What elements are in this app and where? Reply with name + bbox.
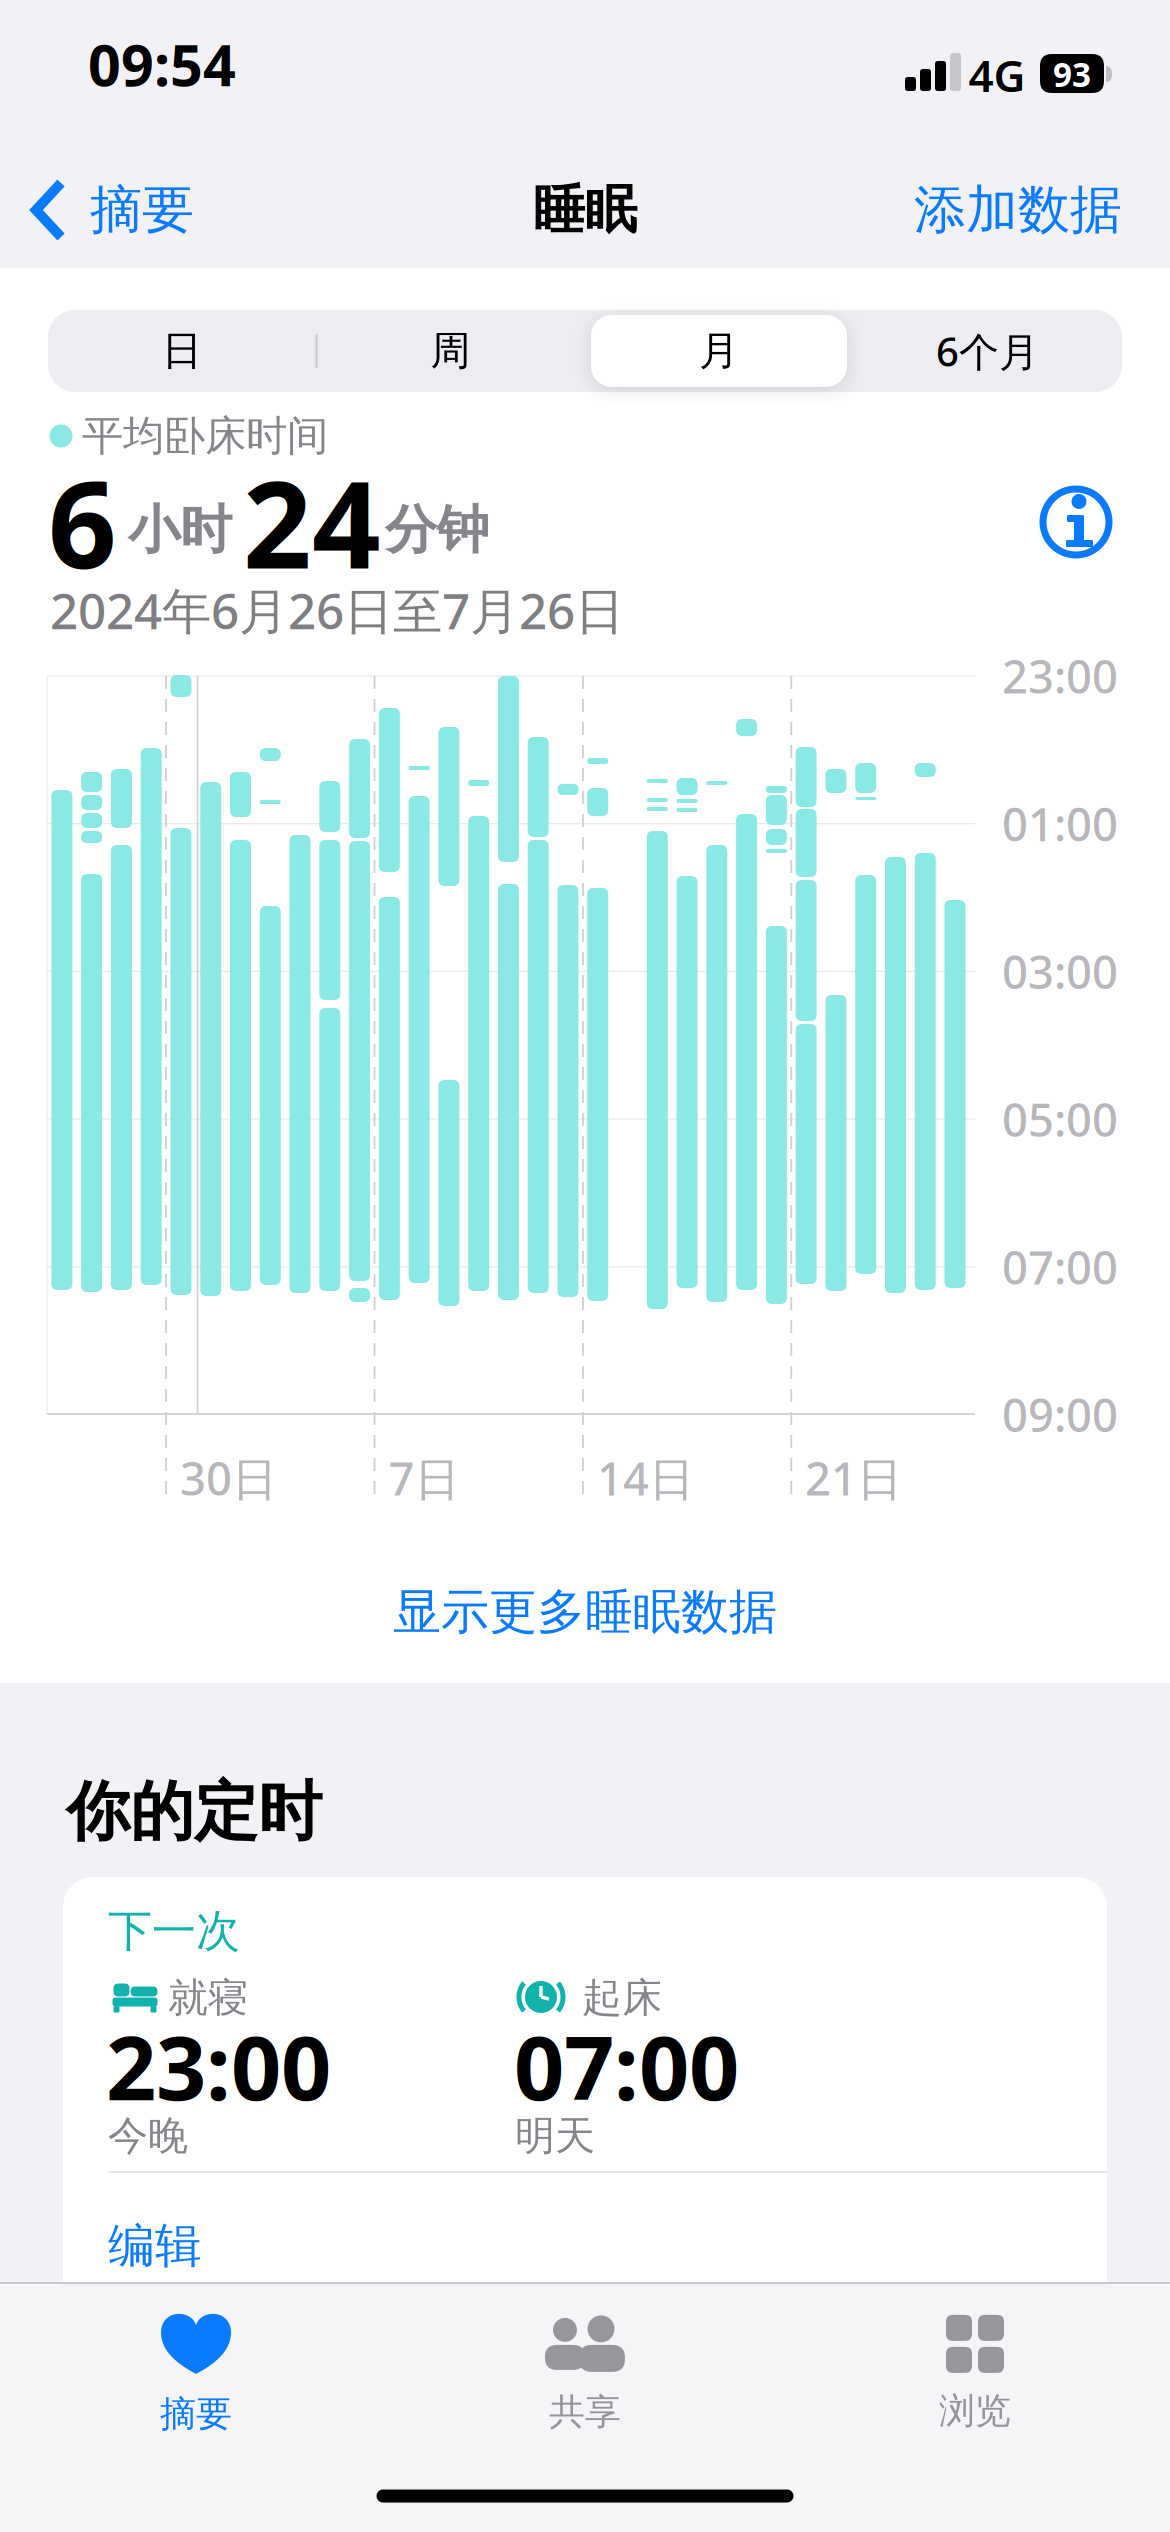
staticText: 14日 xyxy=(597,1448,694,1508)
button[interactable]: 摘要 xyxy=(30,178,194,242)
staticText: 今晚 xyxy=(108,2111,188,2160)
staticText: 07:00 xyxy=(1002,1237,1118,1297)
button[interactable]: 编辑 xyxy=(108,2201,288,2291)
staticText: 浏览 xyxy=(939,2389,1011,2433)
staticText: 09:00 xyxy=(1002,1384,1118,1445)
button[interactable]: 周 xyxy=(320,310,580,392)
staticText: 日 xyxy=(162,326,202,375)
staticText: 下一次 xyxy=(108,1904,240,1958)
staticText: 6 xyxy=(48,442,117,602)
staticText: 分钟 xyxy=(385,498,489,562)
button[interactable]: 关于平均卧床时间 xyxy=(1038,484,1114,560)
staticText: 4G xyxy=(968,46,1025,104)
staticText: 睡眠 xyxy=(533,178,637,242)
button[interactable]: 显示更多睡眠数据 xyxy=(325,1562,845,1662)
staticText: 09:54 xyxy=(88,26,236,102)
staticText: 你的定时 xyxy=(66,1773,322,1851)
staticText: 6个月 xyxy=(936,324,1039,377)
button[interactable]: 6个月 xyxy=(857,310,1117,392)
staticText: 23:00 xyxy=(106,2008,331,2124)
button[interactable]: 日 xyxy=(52,310,312,392)
staticText: 平均卧床时间 xyxy=(82,411,328,461)
staticText: 2024年6月26日至7月26日 xyxy=(50,577,624,643)
staticText: 23:00 xyxy=(1002,646,1118,706)
staticText: 03:00 xyxy=(1002,941,1118,1001)
staticText: 编辑 xyxy=(108,2217,202,2275)
staticText: 共享 xyxy=(549,2390,621,2434)
staticText: 周 xyxy=(430,326,470,375)
staticText: 明天 xyxy=(515,2111,595,2160)
staticText: 添加数据 xyxy=(914,178,1122,242)
button[interactable]: 摘要 xyxy=(159,2312,233,2436)
staticText: 93 xyxy=(1053,52,1091,96)
staticText: 就寝 xyxy=(168,1973,248,2022)
staticText: 小时 xyxy=(128,498,232,562)
button[interactable]: 添加数据 xyxy=(722,170,1122,250)
button[interactable]: 月 xyxy=(589,310,849,392)
staticText: 7日 xyxy=(388,1448,459,1508)
staticText: 01:00 xyxy=(1002,794,1118,854)
staticText: 月 xyxy=(699,326,739,375)
staticText: 起床 xyxy=(582,1973,662,2022)
staticText: 05:00 xyxy=(1002,1089,1118,1149)
staticText: 24 xyxy=(243,442,381,602)
button[interactable]: 浏览 xyxy=(939,2315,1011,2433)
staticText: 30日 xyxy=(180,1448,277,1508)
staticText: 摘要 xyxy=(90,178,194,242)
staticText: 摘要 xyxy=(160,2392,232,2436)
staticText: 显示更多睡眠数据 xyxy=(393,1582,777,1641)
staticText: 07:00 xyxy=(514,2008,739,2124)
staticText: 21日 xyxy=(805,1448,902,1508)
button[interactable]: 共享 xyxy=(543,2314,627,2434)
